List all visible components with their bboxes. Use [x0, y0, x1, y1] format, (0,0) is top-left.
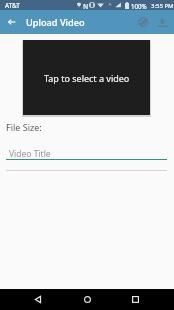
button[interactable]: Video Title [9, 148, 51, 160]
staticText: Tap to select a video [44, 72, 130, 84]
staticText: 100% [131, 2, 147, 10]
button[interactable]: Recent apps [124, 289, 146, 310]
button[interactable]: Home [76, 289, 98, 310]
button[interactable]: Tap to select a video [23, 40, 150, 115]
staticText: N [83, 2, 89, 11]
staticText: AT&T [5, 1, 20, 10]
button[interactable]: Upload [152, 12, 172, 32]
staticText: File Size: [6, 121, 42, 133]
button[interactable]: Back [0, 10, 24, 34]
staticText: 3:55 PM [151, 2, 174, 10]
staticText: Upload Video [26, 16, 85, 29]
button[interactable]: Change language [133, 12, 153, 32]
button[interactable]: Back [27, 289, 49, 310]
